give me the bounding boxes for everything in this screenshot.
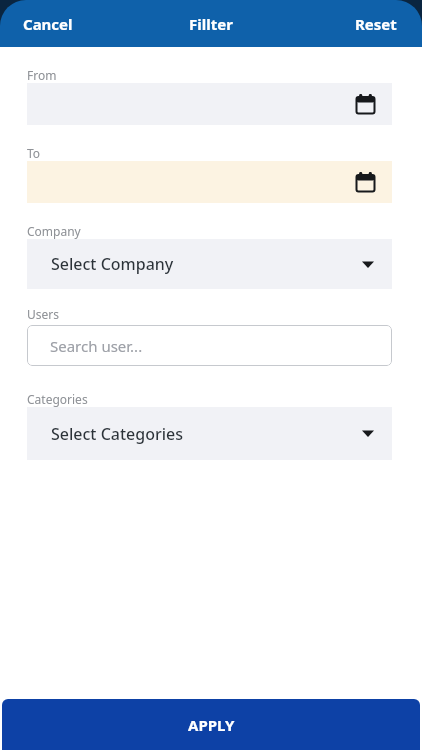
staticText: APPLY — [188, 715, 235, 735]
staticText: Categories — [27, 391, 88, 407]
staticText: Select Company — [51, 253, 174, 275]
staticText: Users — [27, 306, 59, 322]
button[interactable]: Cancel — [0, 14, 73, 34]
staticText: To — [27, 145, 41, 161]
button[interactable]: Fillter — [189, 14, 233, 34]
button[interactable]: Reset — [355, 14, 422, 34]
button[interactable]: Select Categories — [27, 407, 392, 460]
staticText: Company — [27, 223, 81, 239]
staticText: Search user... — [50, 336, 143, 356]
button[interactable]: APPLY — [2, 699, 420, 750]
staticText: Select Categories — [51, 423, 184, 445]
button[interactable] — [27, 83, 392, 125]
button[interactable]: Search user... — [27, 325, 392, 366]
staticText: From — [27, 67, 57, 83]
button[interactable]: Select Company — [27, 239, 392, 289]
button[interactable] — [27, 161, 392, 203]
